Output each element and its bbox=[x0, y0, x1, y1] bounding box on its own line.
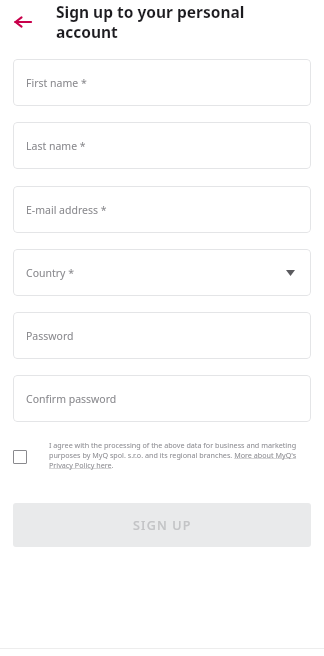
staticText: Password bbox=[26, 329, 74, 343]
button[interactable]: Password bbox=[13, 312, 311, 359]
staticText: I agree with the processing of the above… bbox=[49, 440, 301, 470]
button[interactable]: E-mail address * bbox=[13, 186, 311, 233]
staticText: SIGN UP bbox=[133, 517, 192, 534]
button[interactable]: First name * bbox=[13, 59, 311, 106]
button[interactable]: Last name * bbox=[13, 122, 311, 169]
button[interactable]: Back bbox=[8, 7, 38, 37]
staticText: Country * bbox=[26, 266, 74, 280]
staticText: Confirm password bbox=[26, 392, 117, 406]
button[interactable]: I agree with the processing of the above… bbox=[13, 440, 311, 470]
button[interactable]: Confirm password bbox=[13, 375, 311, 422]
staticText: First name * bbox=[26, 76, 87, 90]
staticText: Last name * bbox=[26, 139, 86, 153]
staticText: Sign up to your personal account bbox=[56, 1, 312, 42]
staticText: E-mail address * bbox=[26, 203, 107, 217]
button[interactable]: SIGN UP bbox=[13, 503, 311, 547]
button[interactable]: Country * bbox=[13, 249, 311, 296]
